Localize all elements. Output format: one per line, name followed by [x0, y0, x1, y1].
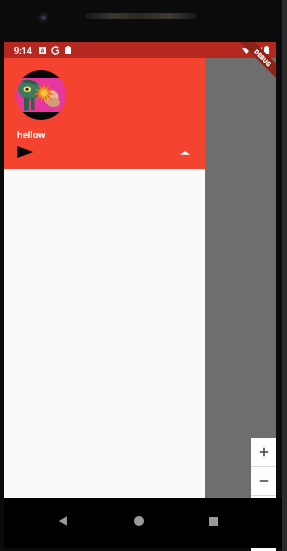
- button[interactable]: Profile picture: [4, 58, 205, 169]
- button[interactable]: 1:1: [251, 496, 276, 522]
- button[interactable]: Home: [134, 516, 144, 526]
- button[interactable]: Send: [16, 143, 38, 161]
- button[interactable]: [205, 58, 276, 498]
- button[interactable]: Expand account list: [179, 149, 191, 157]
- staticText: hellow: [17, 128, 46, 140]
- button[interactable]: Zoom out: [251, 467, 276, 495]
- staticText: DEBUG: [252, 48, 273, 68]
- button[interactable]: Zoom in: [251, 438, 276, 466]
- button[interactable]: Profile picture: [16, 70, 66, 120]
- button[interactable]: Back: [56, 514, 70, 528]
- button[interactable]: Fit to screen: [251, 523, 276, 551]
- staticText: 9:14: [14, 44, 32, 56]
